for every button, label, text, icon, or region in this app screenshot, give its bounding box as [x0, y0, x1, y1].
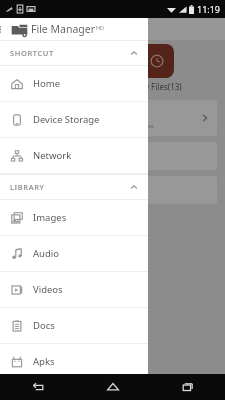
- staticText: Junk File: [15, 150, 51, 162]
- button[interactable]: Downloads: [8, 176, 217, 204]
- button[interactable]: Videos: [0, 272, 148, 307]
- button[interactable]: Apks: [0, 344, 148, 379]
- staticText: Downloads: [15, 184, 63, 196]
- staticText: New Files: [33, 384, 76, 397]
- staticText: Network: [33, 149, 72, 162]
- button[interactable]: Audio: [0, 236, 148, 271]
- staticText: Docs: [33, 319, 55, 332]
- staticText: 11:19: [197, 3, 221, 15]
- button[interactable]: Home: [0, 66, 148, 101]
- button[interactable]: Videos(2): [40, 44, 96, 92]
- button[interactable]: Open navigation drawer: [0, 18, 9, 40]
- staticText: Device 12.55 GB: [15, 109, 86, 121]
- staticText: Apks: [33, 355, 55, 368]
- button[interactable]: Home: [75, 374, 150, 400]
- staticText: LIBRARY: [10, 182, 45, 192]
- staticText: Videos: [33, 283, 63, 296]
- staticText: HD: [96, 24, 105, 31]
- button[interactable]: New Files: [0, 380, 148, 400]
- button[interactable]: Docs: [0, 308, 148, 343]
- staticText: Device Storage: [33, 113, 100, 126]
- button[interactable]: Network: [0, 138, 148, 173]
- button[interactable]: Images: [0, 200, 148, 235]
- staticText: Audio: [33, 247, 59, 260]
- button[interactable]: Junk File: [8, 142, 217, 170]
- staticText: Home: [33, 77, 61, 90]
- button[interactable]: Device 12.55 GB: [8, 100, 217, 136]
- staticText: File Manager: [31, 22, 96, 36]
- staticText: Images: [33, 211, 67, 224]
- button[interactable]: New Files(13): [129, 44, 185, 92]
- staticText: New Files(13): [132, 81, 182, 92]
- staticText: SHORTCUT: [10, 48, 54, 58]
- button[interactable]: Recent apps: [150, 374, 225, 400]
- staticText: Videos(2): [51, 81, 86, 92]
- button[interactable]: Back: [0, 374, 75, 400]
- button[interactable]: Device Storage: [0, 102, 148, 137]
